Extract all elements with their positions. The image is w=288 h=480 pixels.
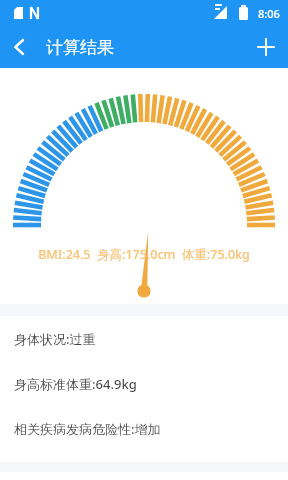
staticText: 身高标准体重:64.9kg	[14, 375, 137, 393]
staticText: 计算结果	[46, 37, 114, 58]
button[interactable]: 身高标准体重:64.9kg	[0, 375, 288, 393]
button[interactable]: Add	[244, 26, 288, 68]
button[interactable]: 身体状况:过重	[0, 330, 288, 348]
staticText: BMI:24.5 身高:175.0cm 体重:75.0kg	[0, 246, 288, 263]
button[interactable]: 相关疾病发病危险性:增加	[0, 420, 288, 438]
staticText: 身体状况:过重	[14, 330, 96, 348]
button[interactable]: Back	[0, 26, 38, 68]
staticText: 相关疾病发病危险性:增加	[14, 420, 161, 438]
staticText: 8:06	[258, 6, 280, 21]
